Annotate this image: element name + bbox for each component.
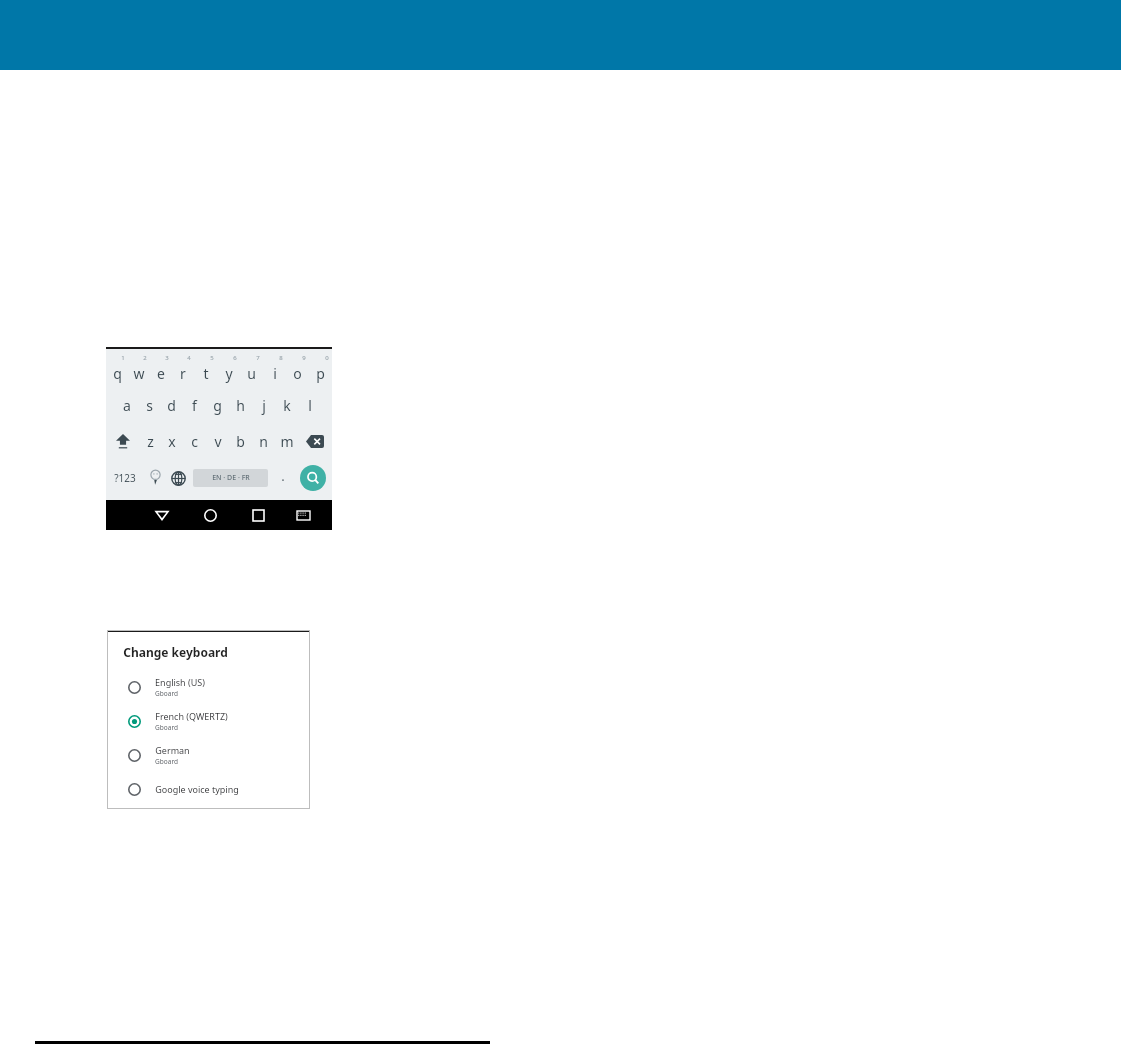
button[interactable]: o	[286, 353, 309, 387]
staticText: c	[191, 432, 198, 451]
button[interactable]: v	[206, 423, 229, 459]
button[interactable]: Back	[138, 500, 186, 530]
button[interactable]: n	[252, 423, 275, 459]
staticText: p	[316, 364, 325, 383]
staticText: g	[213, 396, 222, 415]
button[interactable]: French (QWERTZ)	[107, 704, 310, 738]
staticText: n	[259, 432, 268, 451]
button[interactable]: r	[172, 353, 194, 387]
button[interactable]: q	[106, 353, 128, 387]
staticText: ?123	[114, 471, 136, 485]
staticText: w	[133, 364, 145, 383]
staticText: 7	[256, 354, 260, 362]
button[interactable]: y	[217, 353, 240, 387]
button[interactable]: c	[183, 423, 206, 459]
staticText: Change keyboard	[123, 644, 228, 660]
staticText: EN · DE · FR	[212, 473, 250, 483]
staticText: x	[168, 432, 176, 451]
staticText: h	[236, 396, 245, 415]
staticText: 6	[233, 354, 237, 362]
button[interactable]: z	[139, 423, 161, 459]
staticText: m	[280, 432, 294, 451]
button[interactable]: g	[206, 387, 229, 423]
staticText: English (US)	[155, 676, 205, 688]
staticText: f	[192, 396, 197, 415]
staticText: German	[155, 744, 190, 756]
staticText: a	[123, 396, 131, 415]
button[interactable]: i	[263, 353, 286, 387]
staticText: u	[247, 364, 256, 383]
staticText: Gboard	[155, 757, 178, 766]
button[interactable]: German	[107, 738, 310, 772]
staticText: 4	[187, 354, 191, 362]
button[interactable]: f	[183, 387, 206, 423]
staticText: i	[273, 364, 277, 383]
button[interactable]: Shift	[106, 423, 139, 459]
button[interactable]: j	[252, 387, 275, 423]
staticText: Gboard	[155, 689, 178, 698]
button[interactable]: d	[160, 387, 183, 423]
staticText: v	[214, 432, 222, 451]
button[interactable]: u	[240, 353, 263, 387]
staticText: j	[262, 396, 266, 415]
button[interactable]: k	[275, 387, 298, 423]
staticText: French (QWERTZ)	[155, 710, 228, 722]
staticText: 0	[325, 354, 329, 362]
button[interactable]: m	[275, 423, 298, 459]
staticText: r	[180, 364, 186, 383]
staticText: e	[157, 364, 165, 383]
staticText: b	[236, 432, 245, 451]
staticText: d	[167, 396, 176, 415]
button[interactable]: s	[138, 387, 160, 423]
staticText: o	[293, 364, 302, 383]
staticText: y	[225, 364, 233, 383]
staticText: z	[147, 432, 154, 451]
button[interactable]: l	[298, 387, 321, 423]
staticText: 2	[143, 354, 147, 362]
staticText: .	[281, 467, 285, 485]
staticText: Google voice typing	[155, 783, 239, 795]
button[interactable]: EN · DE · FR	[193, 469, 268, 487]
staticText: k	[283, 396, 291, 415]
button[interactable]: Recents	[234, 500, 282, 530]
button[interactable]: a	[116, 387, 138, 423]
staticText: 9	[302, 354, 306, 362]
staticText: 5	[210, 354, 214, 362]
button[interactable]: p	[309, 353, 332, 387]
button[interactable]: w	[128, 353, 150, 387]
button[interactable]: t	[194, 353, 217, 387]
button[interactable]: ?123	[106, 459, 144, 497]
staticText: 3	[165, 354, 169, 362]
staticText: s	[146, 396, 153, 415]
button[interactable]: English (US)	[107, 670, 310, 704]
staticText: 8	[279, 354, 283, 362]
button[interactable]: b	[229, 423, 252, 459]
button[interactable]: Backspace	[298, 423, 332, 459]
button[interactable]: Search	[294, 459, 332, 497]
staticText: 1	[121, 354, 125, 362]
button[interactable]: x	[161, 423, 183, 459]
button[interactable]: h	[229, 387, 252, 423]
staticText: q	[113, 364, 122, 383]
staticText: t	[203, 364, 209, 383]
button[interactable]: Switch keyboard	[282, 500, 325, 530]
button[interactable]: Home	[186, 500, 234, 530]
button[interactable]: Google voice typing	[107, 772, 310, 806]
button[interactable]: Emoji and comma	[144, 459, 167, 497]
button[interactable]: e	[150, 353, 172, 387]
staticText: l	[308, 396, 312, 415]
button[interactable]: .	[271, 459, 294, 497]
button[interactable]: Change language	[167, 459, 190, 497]
staticText: Gboard	[155, 723, 178, 732]
